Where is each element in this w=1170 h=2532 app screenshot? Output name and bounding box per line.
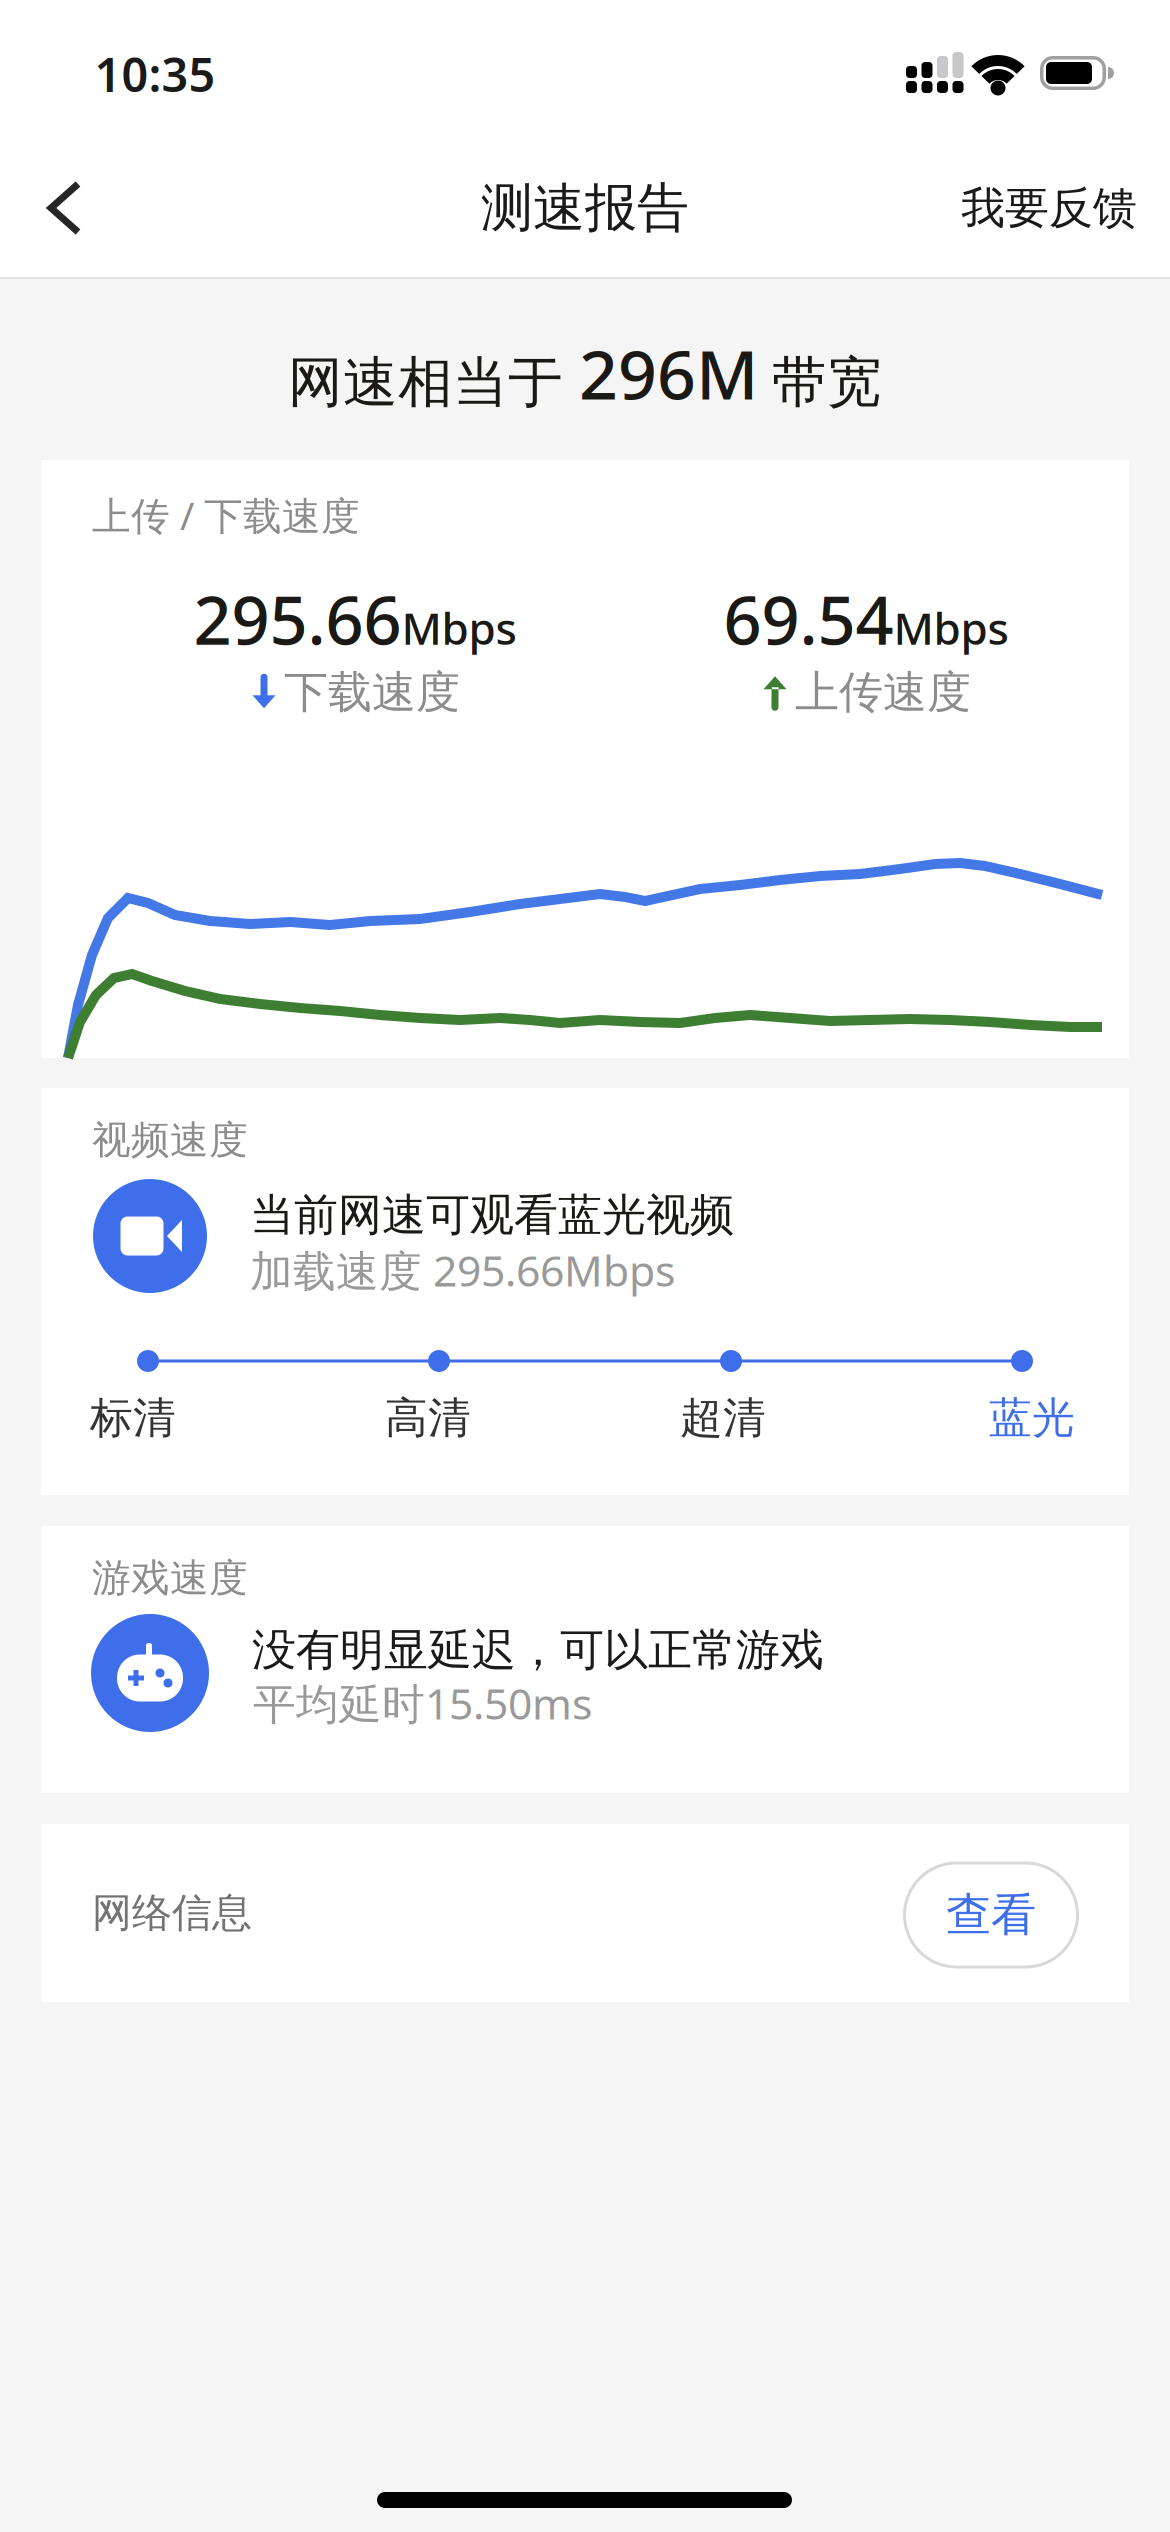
- staticText: 蓝光: [989, 1392, 1075, 1444]
- button[interactable]: 我要反馈: [939, 163, 1159, 253]
- staticText: 平均延时15.50ms: [253, 1675, 592, 1731]
- staticText: 295.66Mbps: [193, 575, 516, 663]
- staticText: 游戏速度: [92, 1554, 248, 1602]
- button[interactable]: 查看: [903, 1861, 1079, 1968]
- staticText: 下载速度: [284, 665, 460, 719]
- staticText: 高清: [385, 1392, 471, 1444]
- button[interactable]: Back: [23, 179, 133, 237]
- staticText: 查看: [946, 1887, 1036, 1943]
- staticText: 加载速度 295.66Mbps: [250, 1242, 675, 1298]
- staticText: 网络信息: [92, 1888, 252, 1937]
- staticText: 当前网速可观看蓝光视频: [250, 1188, 734, 1242]
- staticText: 10:35: [94, 43, 215, 105]
- staticText: 测速报告: [481, 176, 689, 240]
- staticText: 标清: [90, 1392, 176, 1444]
- staticText: 我要反馈: [961, 181, 1137, 235]
- staticText: 没有明显延迟，可以正常游戏: [252, 1623, 824, 1677]
- staticText: 69.54Mbps: [723, 575, 1008, 663]
- staticText: 上传 / 下载速度: [92, 489, 360, 541]
- staticText: 超清: [680, 1392, 766, 1444]
- staticText: 上传速度: [795, 665, 971, 719]
- staticText: 视频速度: [92, 1116, 248, 1164]
- staticText: 网速相当于 296M 带宽: [288, 328, 882, 418]
